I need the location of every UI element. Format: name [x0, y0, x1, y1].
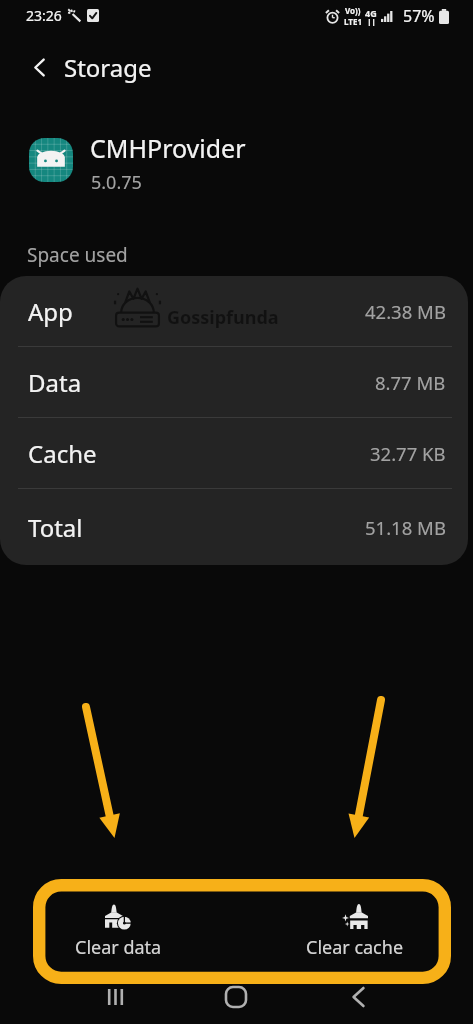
staticText: 42.38 MB [365, 299, 446, 324]
staticText: 23:26 [26, 6, 62, 25]
staticText: Total [28, 511, 83, 544]
staticText: Data [28, 366, 82, 399]
button[interactable]: Back [22, 50, 56, 84]
button[interactable]: Recents [93, 978, 137, 1016]
staticText: Vo)) [345, 5, 361, 16]
staticText: 51.18 MB [365, 515, 446, 540]
staticText: LTE1 [344, 16, 362, 27]
staticText: Clear data [75, 935, 162, 960]
staticText: App [28, 295, 73, 328]
button[interactable]: App [0, 276, 468, 346]
staticText: 32.77 KB [370, 441, 446, 466]
staticText: 8.77 MB [375, 370, 446, 395]
staticText: CMHProvider [90, 131, 246, 165]
button[interactable]: Clear data [0, 879, 236, 984]
staticText: Storage [64, 51, 152, 84]
staticText: Clear cache [306, 935, 404, 960]
staticText: 5.0.75 [91, 170, 142, 195]
staticText: 57% [403, 5, 435, 27]
button[interactable]: Clear cache [236, 879, 473, 984]
staticText: Space used [27, 242, 128, 268]
button[interactable]: Home [214, 978, 258, 1016]
button[interactable]: Back [336, 978, 380, 1016]
staticText: Cache [28, 437, 97, 470]
staticText: Gossipfunda [167, 305, 279, 330]
button[interactable]: Total [0, 489, 468, 565]
button[interactable]: Data [0, 347, 468, 417]
button[interactable]: Cache [0, 418, 468, 488]
staticText: 4G [365, 7, 377, 19]
